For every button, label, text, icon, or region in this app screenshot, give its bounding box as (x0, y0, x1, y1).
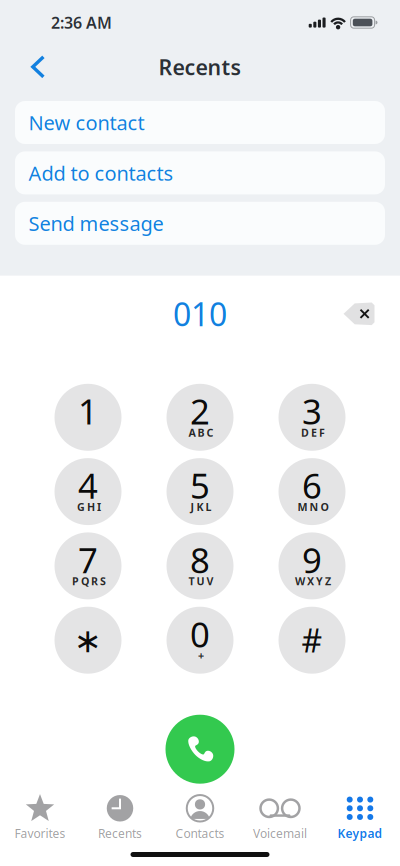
button[interactable]: Recents (80, 793, 160, 843)
button[interactable]: 7 (54, 532, 121, 599)
button[interactable]: 0 (166, 607, 233, 674)
staticText: X (307, 574, 314, 588)
staticText: Add to contacts (28, 160, 173, 186)
staticText: W (295, 574, 305, 588)
staticText: Send message (28, 210, 163, 237)
staticText: N (309, 500, 318, 514)
staticText: ∗ (74, 622, 102, 660)
staticText: F (319, 425, 325, 440)
staticText: 8 (190, 537, 210, 583)
button[interactable]: # (278, 607, 345, 674)
staticText: Recents (158, 53, 241, 81)
button[interactable]: 9 (278, 532, 345, 599)
staticText: 1 (78, 388, 98, 434)
button[interactable]: 2 (166, 384, 233, 451)
button[interactable]: 3 (278, 384, 345, 451)
button[interactable]: Call (165, 715, 234, 784)
button[interactable]: Contacts (160, 793, 240, 843)
button[interactable]: Favorites (0, 793, 80, 843)
staticText: + (198, 648, 204, 662)
staticText: 5 (190, 462, 210, 508)
button[interactable]: 6 (278, 458, 345, 525)
staticText: 2 (190, 388, 210, 434)
button[interactable]: 4 (54, 458, 121, 525)
staticText: 4 (78, 462, 98, 508)
button[interactable]: Add to contacts (15, 151, 385, 194)
button[interactable]: 1 (54, 384, 121, 451)
staticText: Y (316, 574, 323, 588)
staticText: O (320, 500, 328, 514)
staticText: New contact (28, 109, 144, 136)
button[interactable]: Keypad (320, 793, 400, 843)
staticText: Keypad (337, 825, 382, 841)
staticText: D (301, 425, 309, 440)
staticText: G (77, 500, 85, 514)
staticText: H (87, 500, 95, 514)
staticText: V (206, 574, 213, 588)
button[interactable]: Back (0, 46, 65, 88)
staticText: Z (325, 574, 331, 588)
staticText: J (190, 500, 194, 514)
staticText: A (188, 425, 195, 440)
staticText: K (196, 500, 203, 514)
staticText: I (97, 500, 101, 514)
staticText: M (297, 500, 307, 514)
staticText: Contacts (175, 825, 224, 841)
staticText: # (301, 619, 322, 661)
button[interactable]: ∗ (54, 607, 121, 674)
staticText: 010 (173, 293, 227, 335)
staticText: 2:36 AM (51, 12, 112, 33)
button[interactable]: 5 (166, 458, 233, 525)
staticText: T (188, 574, 194, 588)
staticText: 3 (302, 388, 322, 434)
button[interactable]: Send message (15, 202, 385, 245)
staticText: P (72, 574, 79, 588)
staticText: Q (81, 574, 89, 588)
staticText: Favorites (14, 825, 65, 841)
staticText: S (100, 574, 106, 588)
staticText: Recents (98, 825, 142, 841)
staticText: E (311, 425, 317, 440)
staticText: B (197, 425, 204, 440)
button[interactable]: Delete (335, 296, 383, 332)
staticText: 0 (190, 611, 210, 657)
staticText: 7 (78, 537, 98, 583)
staticText: 9 (302, 537, 322, 583)
staticText: R (91, 574, 98, 588)
button[interactable]: 8 (166, 532, 233, 599)
staticText: Voicemail (253, 825, 307, 841)
staticText: U (196, 574, 204, 588)
staticText: C (206, 425, 213, 440)
button[interactable]: New contact (15, 101, 385, 144)
staticText: 6 (302, 462, 322, 508)
staticText: L (205, 500, 211, 514)
button[interactable]: Voicemail (240, 793, 320, 843)
